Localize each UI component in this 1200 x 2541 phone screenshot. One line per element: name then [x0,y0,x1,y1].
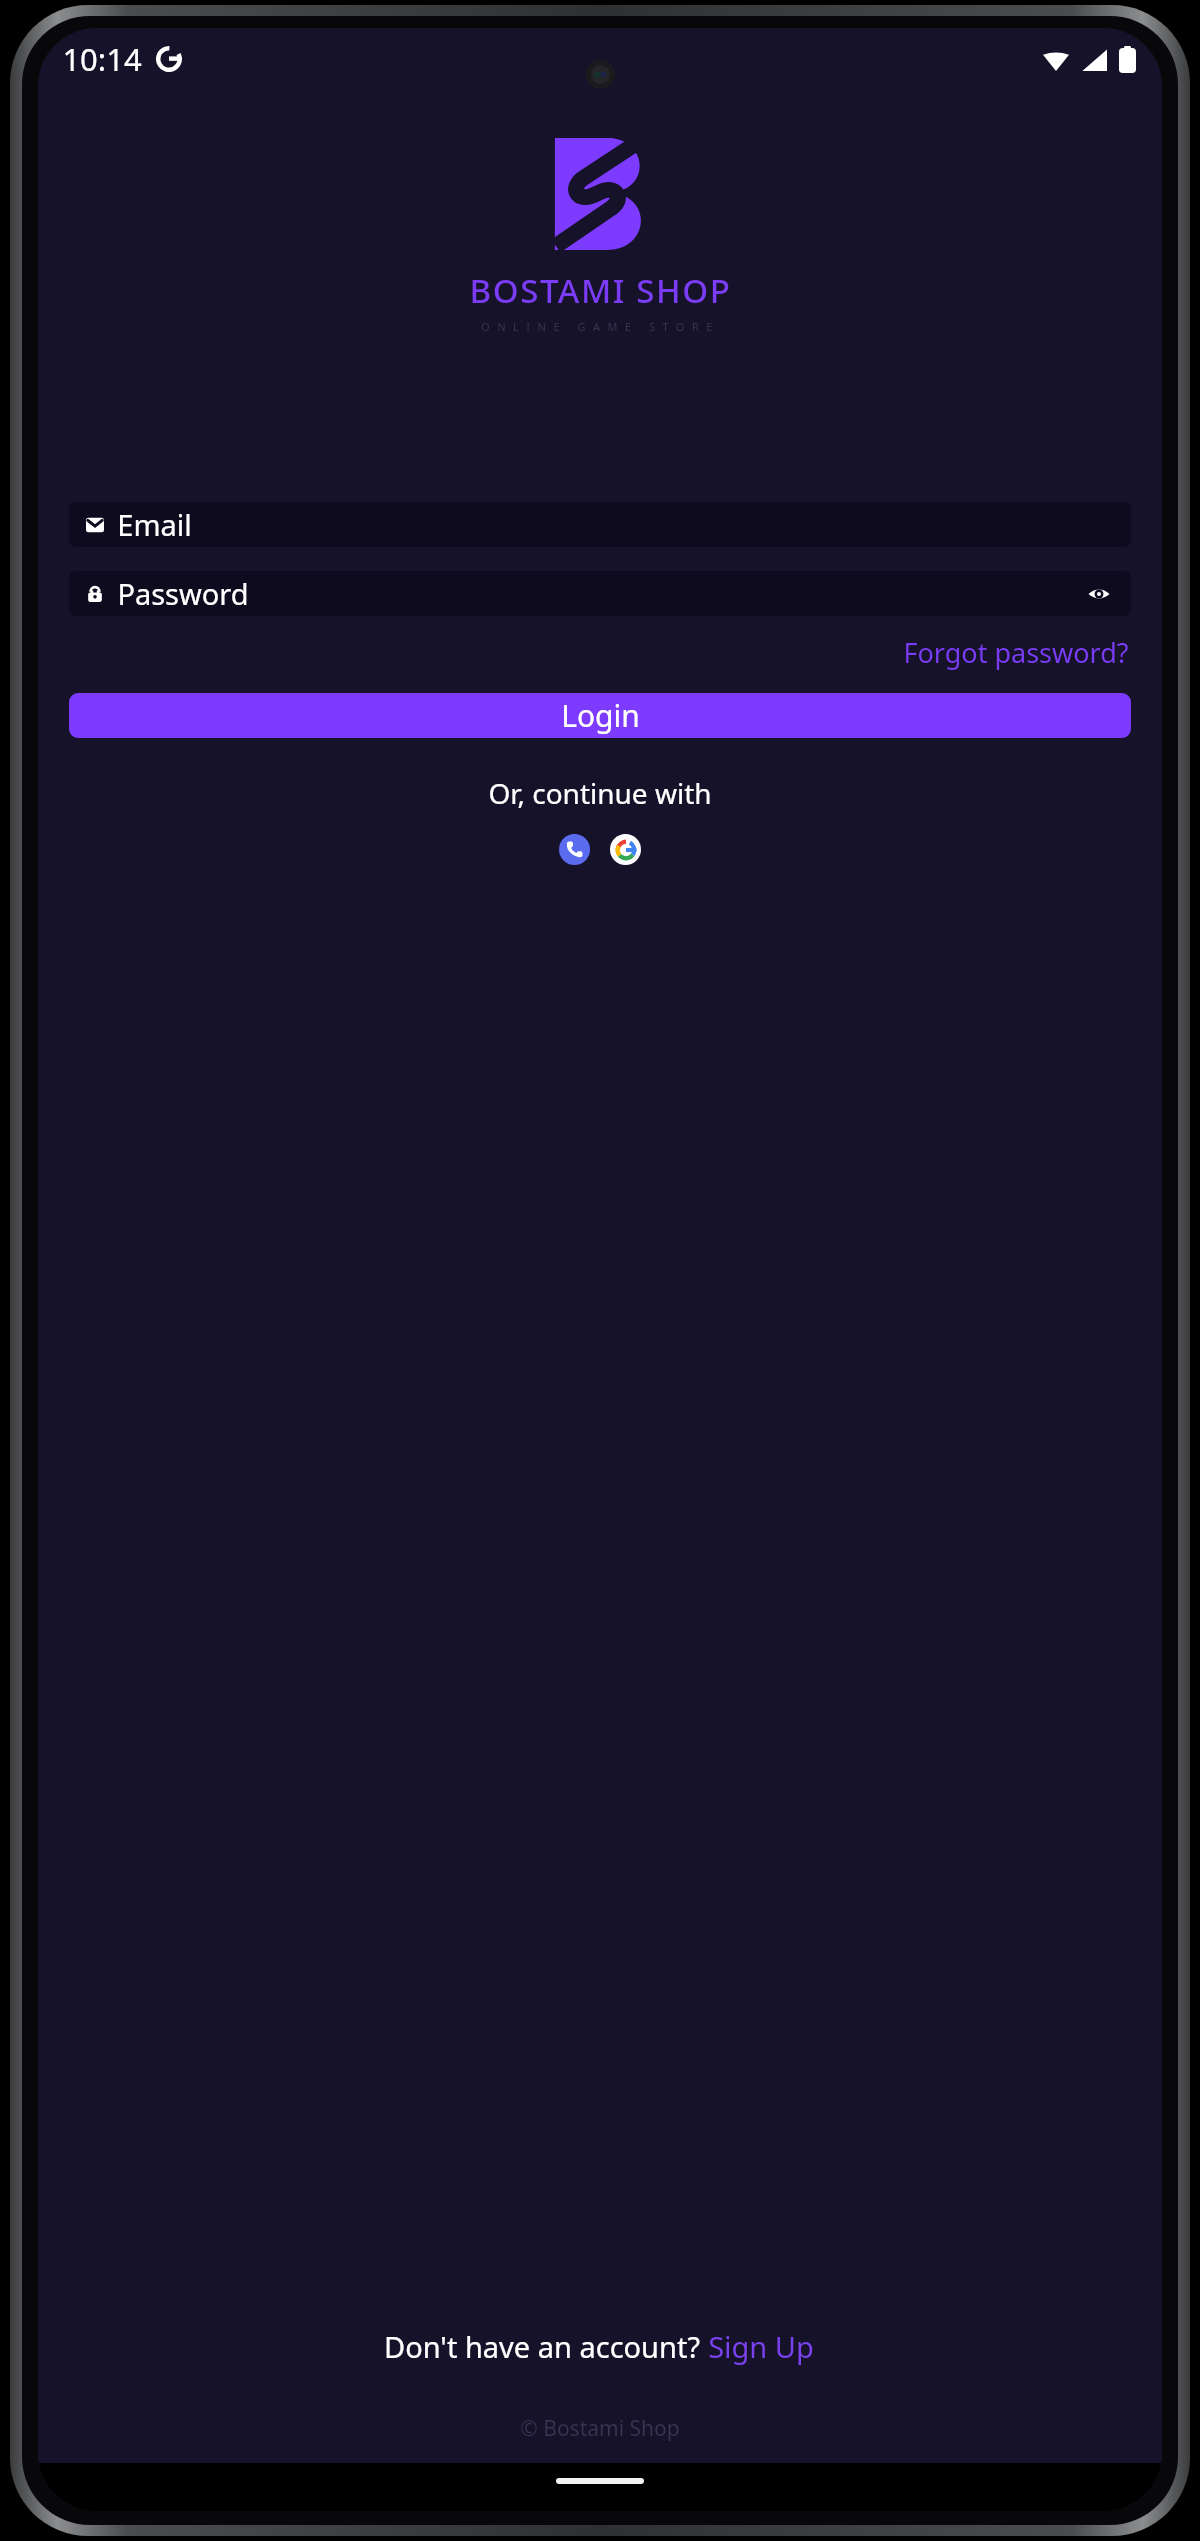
staticText: 10:14 [62,38,142,80]
staticText: Sign Up [708,2327,814,2366]
staticText: ONLINE GAME STORE [481,319,720,334]
button[interactable]: Continue with phone [559,834,590,865]
staticText: Login [561,695,640,736]
staticText: Don't have an account? [384,2327,700,2366]
staticText: Or, continue with [488,774,712,812]
staticText: Password [117,574,249,613]
button[interactable]: Forgot password? [901,630,1131,675]
staticText: Email [117,505,192,544]
staticText: Forgot password? [903,634,1129,671]
staticText: BOSTAMI SHOP [469,268,732,313]
button[interactable]: Continue with Google [610,834,641,865]
button[interactable]: Show password [1084,579,1114,609]
staticText: © Bostami Shop [520,2414,680,2443]
button[interactable]: Sign Up [700,2323,816,2370]
button[interactable]: Email [69,502,1131,547]
button[interactable]: Password [69,571,1131,616]
button[interactable]: Login [69,693,1131,738]
